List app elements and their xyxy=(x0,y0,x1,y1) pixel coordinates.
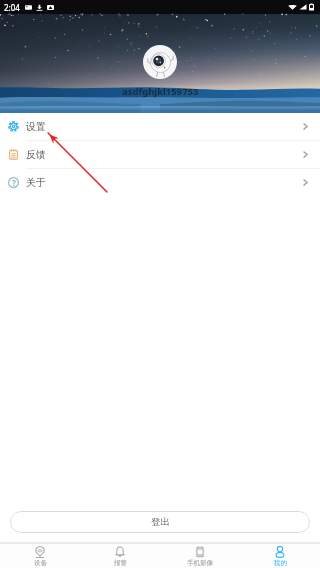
button[interactable]: 报警 xyxy=(80,544,160,568)
staticText: 报警 xyxy=(114,559,127,567)
button[interactable]: 我的 xyxy=(240,544,320,568)
button[interactable]: User avatar xyxy=(143,45,177,79)
button[interactable]: ? xyxy=(0,169,320,196)
staticText: 我的 xyxy=(274,559,287,567)
staticText: ? xyxy=(12,177,16,188)
staticText: 设备 xyxy=(34,559,47,567)
staticText: 2:04 xyxy=(4,2,20,13)
button[interactable]: 反馈 xyxy=(0,141,320,168)
staticText: 设置 xyxy=(26,120,46,133)
staticText: 登出 xyxy=(151,516,170,528)
button[interactable]: 设置 xyxy=(0,113,320,140)
staticText: 手机影像 xyxy=(187,559,213,567)
button[interactable]: 设备 xyxy=(0,544,80,568)
button[interactable]: 手机影像 xyxy=(160,544,240,568)
staticText: 关于 xyxy=(26,176,46,189)
staticText: 反馈 xyxy=(26,148,46,161)
staticText: asdfghjkl159753 xyxy=(122,85,199,98)
button[interactable]: 登出 xyxy=(10,511,310,533)
